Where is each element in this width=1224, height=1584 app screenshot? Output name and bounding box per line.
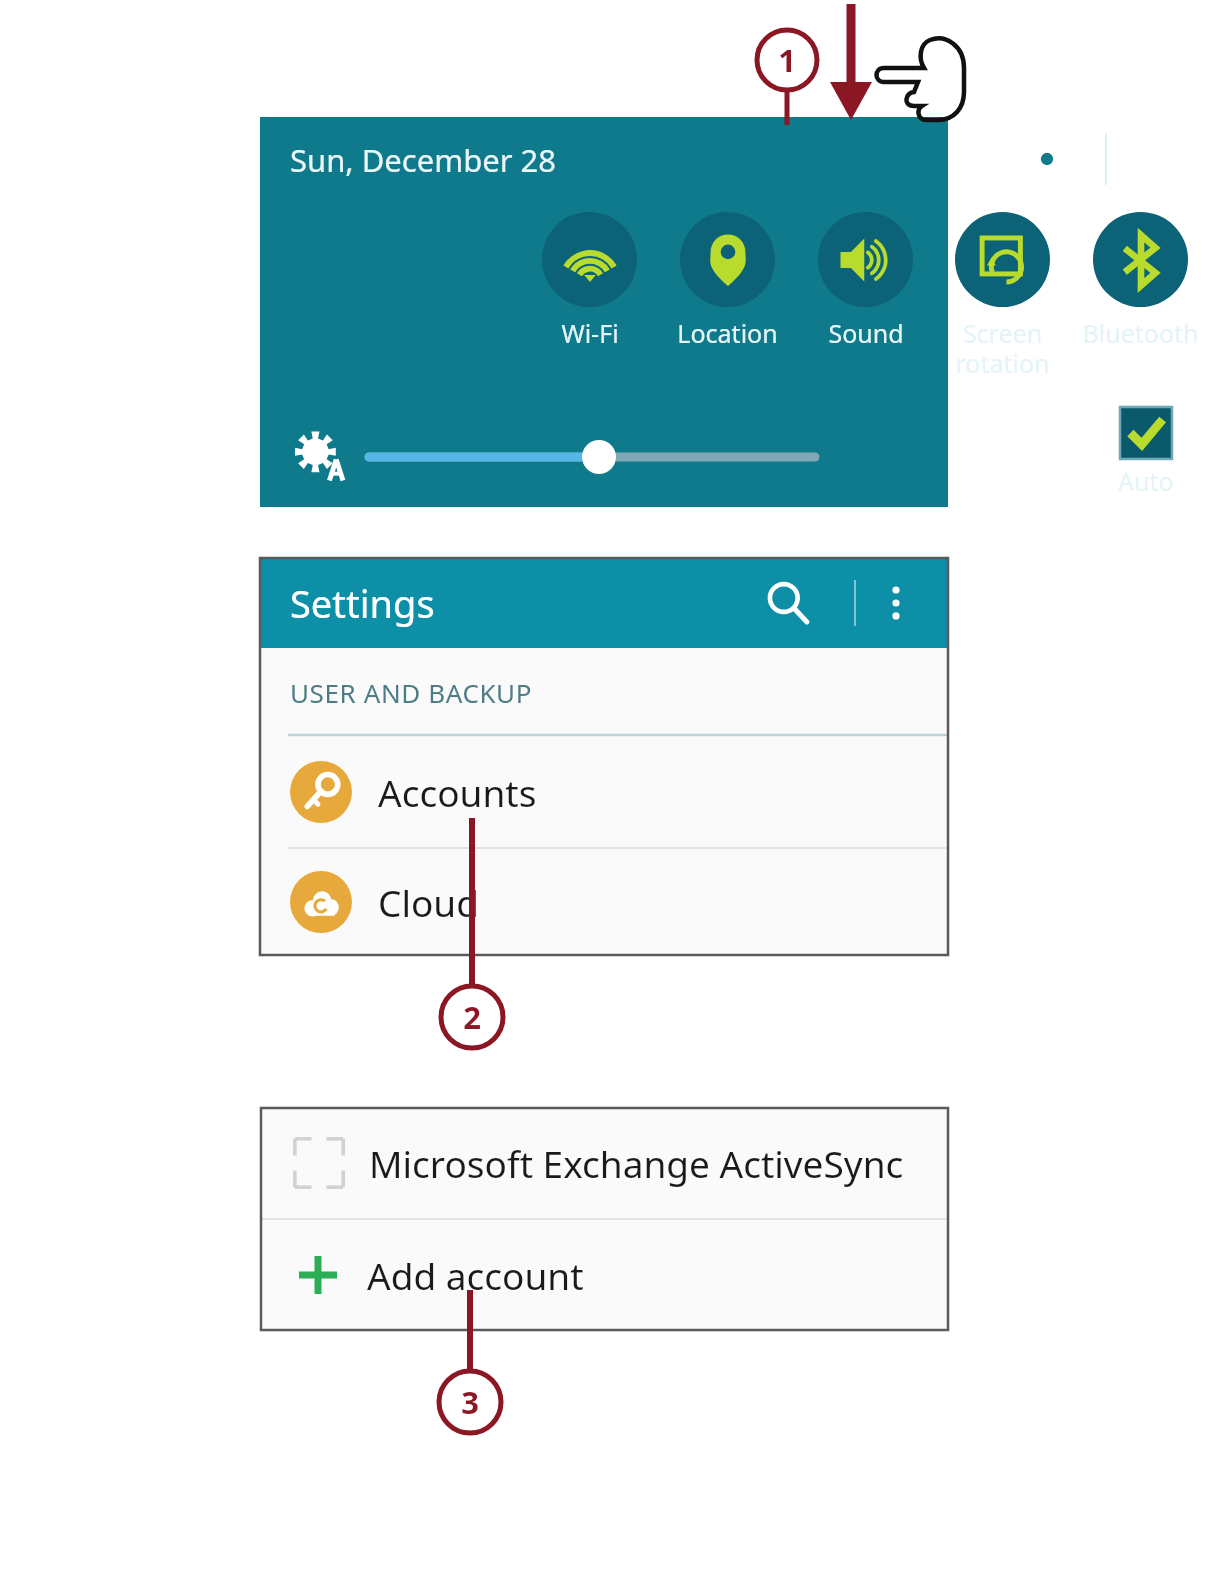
staticText: Screen rotation: [955, 316, 1050, 377]
button[interactable]: Cloud: [260, 849, 948, 955]
button[interactable]: Settings: [1017, 129, 1077, 189]
staticText: Wi-Fi: [561, 316, 619, 350]
button[interactable]: Bluetooth: [1072, 212, 1208, 377]
staticText: Bluetooth: [1082, 316, 1199, 350]
staticText: Sound: [828, 316, 904, 350]
staticText: Cloud: [378, 877, 479, 927]
staticText: USER AND BACKUP: [290, 675, 533, 710]
staticText: Accounts: [378, 767, 537, 817]
staticText: Add account: [367, 1250, 584, 1300]
button[interactable]: Add account: [261, 1220, 948, 1330]
staticText: Auto: [1118, 464, 1174, 497]
staticText: 1: [778, 39, 796, 81]
button[interactable]: Screen rotation: [934, 212, 1070, 377]
staticText: Settings: [290, 577, 435, 629]
button[interactable]: Sound: [797, 212, 933, 377]
button[interactable]: Location: [659, 212, 795, 377]
button[interactable]: Auto: [1098, 407, 1194, 497]
staticText: Location: [677, 316, 778, 350]
other: Brightness: [278, 417, 358, 497]
staticText: Microsoft Exchange ActiveSync: [369, 1138, 904, 1188]
button[interactable]: Accounts: [260, 736, 948, 847]
button[interactable]: Microsoft Exchange ActiveSync: [261, 1108, 948, 1218]
button[interactable]: [365, 432, 815, 482]
button[interactable]: Search: [756, 571, 820, 635]
button[interactable]: More options: [866, 573, 926, 633]
button[interactable]: Wi-Fi: [521, 212, 657, 377]
staticText: Sun, December 28: [290, 139, 557, 181]
staticText: 2: [463, 996, 481, 1038]
staticText: 3: [461, 1381, 479, 1423]
